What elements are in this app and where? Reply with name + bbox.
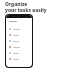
staticText: Organize (5, 1, 28, 8)
staticText: your tasks easily (5, 7, 47, 14)
button[interactable] (9, 32, 32, 38)
button[interactable] (9, 38, 32, 44)
button[interactable] (9, 26, 32, 32)
button[interactable] (9, 44, 32, 50)
button[interactable] (9, 56, 32, 62)
button[interactable] (9, 50, 32, 56)
